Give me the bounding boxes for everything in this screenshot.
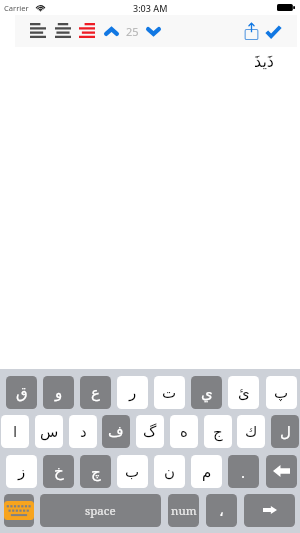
button[interactable]: Previous match xyxy=(100,21,123,42)
button[interactable]: num xyxy=(168,494,199,527)
staticText: ن xyxy=(164,463,176,480)
button[interactable]: Share xyxy=(240,19,262,43)
staticText: ق xyxy=(16,384,28,401)
button[interactable]: س xyxy=(35,415,63,448)
staticText: ج xyxy=(213,423,223,440)
button[interactable]: ج xyxy=(204,415,232,448)
staticText: د xyxy=(80,423,87,440)
staticText: م xyxy=(202,463,212,480)
button[interactable]: گ xyxy=(136,415,164,448)
staticText: ز xyxy=(18,463,26,480)
staticText: . xyxy=(241,462,246,482)
button[interactable]: Align right xyxy=(75,19,98,41)
button[interactable]: . xyxy=(228,455,259,488)
staticText: ئ xyxy=(238,384,250,401)
button[interactable]: چ xyxy=(80,455,111,488)
staticText: ب xyxy=(125,463,140,480)
button[interactable]: Align left xyxy=(26,19,49,41)
button[interactable]: خ xyxy=(43,455,74,488)
button[interactable]: space xyxy=(40,494,161,527)
staticText: پ xyxy=(274,384,289,401)
button[interactable]: ئ xyxy=(228,376,259,409)
button[interactable]: ي xyxy=(191,376,222,409)
staticText: 3:03 AM xyxy=(133,2,168,14)
staticText: چ xyxy=(91,463,101,480)
staticText: و xyxy=(55,384,63,401)
button[interactable]: ز xyxy=(6,455,37,488)
button[interactable]: ف xyxy=(102,415,130,448)
staticText: ا xyxy=(13,423,18,440)
button[interactable]: ب xyxy=(117,455,148,488)
button[interactable]: ق xyxy=(6,376,37,409)
button[interactable]: ت xyxy=(154,376,185,409)
button[interactable]: پ xyxy=(266,376,297,409)
staticText: ف xyxy=(108,423,124,440)
staticText: ت xyxy=(162,384,177,401)
button[interactable]: Return xyxy=(244,494,295,527)
staticText: ك xyxy=(245,423,258,440)
staticText: Carrier xyxy=(4,3,29,13)
button[interactable]: م xyxy=(191,455,222,488)
staticText: ل xyxy=(280,423,291,440)
button[interactable]: ه xyxy=(170,415,198,448)
button[interactable]: Done xyxy=(262,19,284,43)
staticText: 25 xyxy=(126,24,139,38)
staticText: گ xyxy=(143,423,157,440)
button[interactable]: Switch keyboard xyxy=(4,494,34,527)
button[interactable]: ا xyxy=(1,415,29,448)
button[interactable]: ع xyxy=(80,376,111,409)
button[interactable]: ك xyxy=(237,415,265,448)
staticText: ي xyxy=(201,384,213,401)
staticText: space xyxy=(85,503,116,519)
staticText: خ xyxy=(54,463,64,480)
staticText: ه xyxy=(180,423,188,440)
button[interactable]: ، xyxy=(206,494,237,527)
staticText: ر xyxy=(129,384,137,401)
staticText: ، xyxy=(219,502,224,519)
staticText: num xyxy=(171,503,197,519)
staticText: س xyxy=(40,423,59,440)
button[interactable]: ل xyxy=(271,415,299,448)
button[interactable]: ن xyxy=(154,455,185,488)
staticText: ع xyxy=(91,384,100,401)
staticText: ذَيذَ xyxy=(254,52,274,71)
button[interactable]: ر xyxy=(117,376,148,409)
button[interactable]: Align center xyxy=(51,19,74,41)
button[interactable]: Next match xyxy=(142,21,165,42)
button[interactable]: و xyxy=(43,376,74,409)
button[interactable]: Backspace xyxy=(266,455,297,488)
button[interactable]: د xyxy=(69,415,97,448)
